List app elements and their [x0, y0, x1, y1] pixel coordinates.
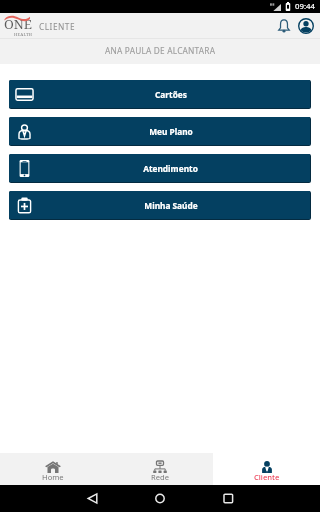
staticText: Atendimento	[143, 163, 198, 174]
staticText: Minha Saúde	[144, 200, 198, 211]
staticText: Home	[42, 472, 64, 482]
staticText: ONE	[4, 15, 33, 33]
button[interactable]: Recentes	[211, 485, 245, 512]
button[interactable]: Rede	[106, 453, 213, 485]
button[interactable]: Minha Saúde	[9, 191, 310, 219]
button[interactable]: Voltar	[76, 485, 110, 512]
button[interactable]: Meu Plano	[9, 117, 310, 145]
button[interactable]: Home	[0, 453, 106, 485]
button[interactable]: Início	[143, 485, 177, 512]
staticText: 09:44	[295, 1, 315, 12]
staticText: HEALTH	[14, 31, 33, 37]
button[interactable]: Notificações	[274, 16, 294, 36]
staticText: Cartões	[155, 89, 187, 100]
button[interactable]: Atendimento	[9, 154, 310, 182]
staticText: Meu Plano	[149, 126, 193, 137]
button[interactable]: Perfil	[296, 16, 316, 36]
button[interactable]: Cliente	[213, 453, 320, 485]
staticText: Rede	[151, 472, 169, 482]
staticText: Cliente	[254, 472, 280, 482]
staticText: CLIENTE	[39, 21, 76, 32]
staticText: ANA PAULA DE ALCANTARA	[105, 45, 216, 56]
button[interactable]: Cartões	[9, 80, 310, 108]
